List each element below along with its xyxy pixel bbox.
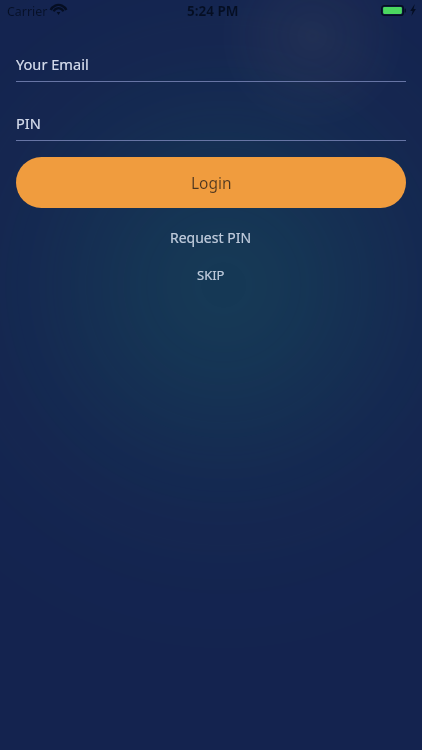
other: Battery full xyxy=(381,5,404,16)
button[interactable]: SKIP xyxy=(0,264,422,285)
staticText: SKIP xyxy=(197,266,225,284)
other: Wi-Fi signal xyxy=(51,5,66,15)
staticText: Carrier xyxy=(7,3,48,20)
button[interactable]: PIN xyxy=(16,109,406,141)
button[interactable]: Login xyxy=(16,157,406,208)
staticText: Login xyxy=(191,172,232,193)
staticText: PIN xyxy=(16,113,41,133)
button[interactable]: Your Email xyxy=(16,50,406,82)
button[interactable]: Request PIN xyxy=(0,226,422,248)
staticText: Your Email xyxy=(16,54,89,74)
other: Charging xyxy=(409,4,417,16)
staticText: Request PIN xyxy=(170,228,252,247)
staticText: 5:24 PM xyxy=(187,2,239,20)
